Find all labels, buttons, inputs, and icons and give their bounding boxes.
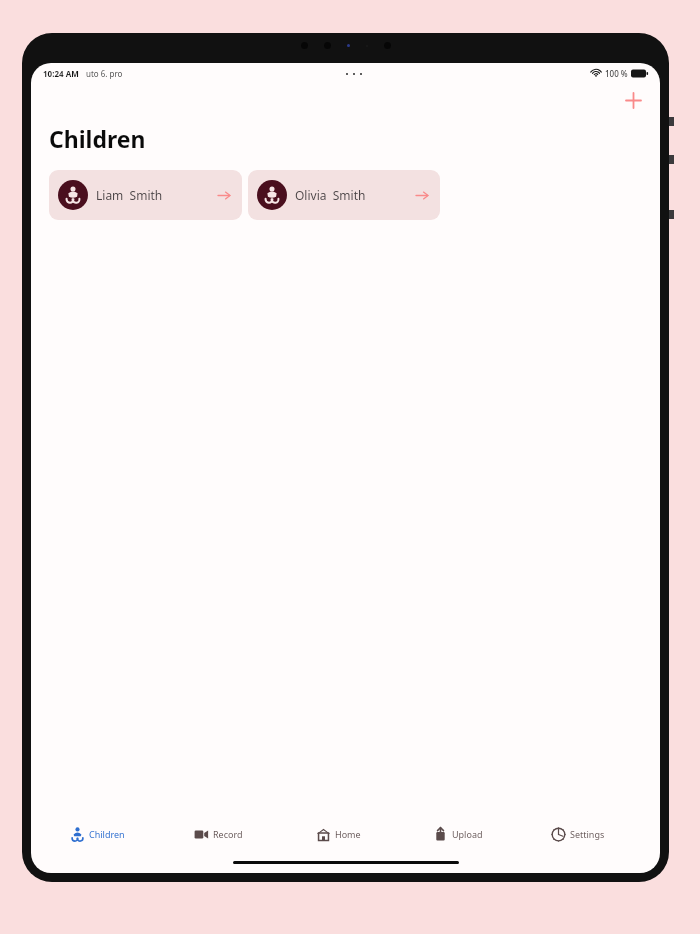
button[interactable]: Record: [158, 817, 278, 851]
button[interactable]: Add child: [620, 87, 646, 113]
staticText: Settings: [570, 828, 605, 840]
button[interactable]: Liam Smith: [49, 170, 242, 220]
button[interactable]: Settings: [518, 817, 638, 851]
button[interactable]: Children: [37, 817, 158, 851]
staticText: Record: [213, 828, 243, 840]
staticText: Children: [49, 123, 146, 154]
button[interactable]: Home: [278, 817, 398, 851]
staticText: Children: [89, 828, 125, 840]
staticText: Upload: [452, 828, 483, 840]
button[interactable]: Upload: [398, 817, 518, 851]
staticText: uto 6. pro: [86, 68, 123, 79]
button[interactable]: Olivia Smith: [248, 170, 440, 220]
staticText: Home: [335, 828, 361, 840]
staticText: Olivia Smith: [295, 187, 366, 203]
staticText: 10:24 AM: [43, 68, 79, 79]
staticText: 100 %: [605, 68, 628, 79]
staticText: Liam Smith: [96, 187, 163, 203]
